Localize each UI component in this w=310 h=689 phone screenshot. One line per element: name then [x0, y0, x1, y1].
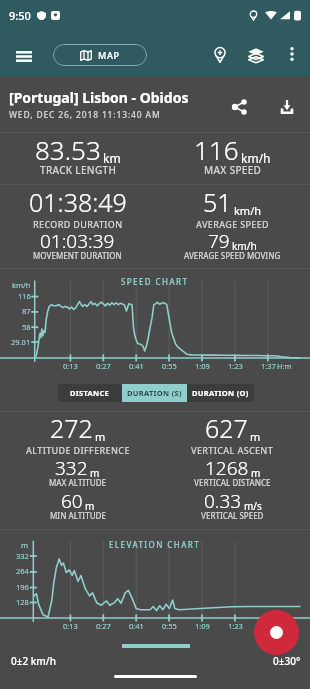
staticText: km [103, 150, 121, 166]
staticText: 196 [16, 582, 29, 592]
button[interactable]: Share [222, 90, 256, 124]
staticText: 01:38:49 [29, 185, 127, 219]
staticText: 1:09 [195, 621, 210, 631]
staticText: DISTANCE [70, 388, 110, 398]
button[interactable]: MAP [53, 44, 147, 66]
button[interactable]: DISTANCE [58, 384, 122, 402]
staticText: RECORD DURATION [33, 218, 123, 230]
staticText: km/h [234, 203, 262, 218]
staticText: 51 [203, 185, 232, 219]
staticText: MAX SPEED [204, 163, 262, 177]
staticText: 0:41 [129, 621, 144, 631]
staticText: km/h [241, 150, 271, 166]
staticText: 0±30° [273, 654, 301, 668]
staticText: 1:09 [195, 361, 210, 371]
staticText: m [251, 466, 261, 480]
button[interactable]: Record [254, 610, 299, 655]
button[interactable]: DURATION (O) [187, 384, 254, 402]
staticText: DURATION (S) [127, 388, 182, 398]
staticText: m/s [244, 499, 262, 513]
staticText: 128 [16, 597, 29, 607]
button[interactable]: More options [276, 38, 308, 70]
staticText: m [90, 466, 100, 480]
staticText: MOVEMENT DURATION [33, 250, 122, 261]
staticText: m [250, 429, 261, 444]
staticText: 0:55 [162, 361, 177, 371]
staticText: 0:13 [63, 621, 78, 631]
staticText: 0.33 [204, 488, 242, 514]
staticText: km/h [12, 280, 31, 290]
staticText: 1268 [205, 455, 249, 481]
button[interactable]: Download [270, 90, 304, 124]
staticText: AVERAGE SPEED MOVING [184, 250, 281, 261]
staticText: 87 [22, 306, 31, 316]
staticText: 1:23 [228, 361, 243, 371]
staticText: 29.01 [11, 337, 31, 347]
staticText: 0:27 [96, 361, 111, 371]
button[interactable]: Map layers [239, 38, 273, 72]
staticText: TRACK LENGTH [40, 163, 117, 177]
staticText: ALTITUDE DIFFERENCE [26, 444, 130, 456]
staticText: 60 [61, 488, 83, 514]
staticText: MIN ALTITUDE [50, 510, 106, 521]
staticText: m [21, 540, 29, 550]
staticText: SPEED CHART [121, 276, 189, 287]
staticText: 0±2 km/h [11, 654, 56, 668]
staticText: AVERAGE SPEED [196, 218, 269, 230]
button[interactable]: DURATION (S) [122, 384, 187, 402]
staticText: 0:41 [129, 361, 144, 371]
staticText: 1:37 [261, 361, 276, 371]
staticText: 79 [208, 228, 230, 254]
staticText: 0:55 [162, 621, 177, 631]
staticText: 116 [18, 291, 31, 301]
staticText: VERTICAL ASCENT [191, 444, 274, 456]
staticText: MAX ALTITUDE [49, 477, 106, 488]
staticText: VERTICAL SPEED [201, 510, 264, 521]
staticText: WED, DEC 26, 2018 11:13:40 AM [9, 109, 161, 121]
staticText: 58 [22, 322, 31, 332]
staticText: 116 [194, 132, 239, 167]
staticText: m [85, 499, 95, 513]
staticText: 0:27 [96, 621, 111, 631]
staticText: 332 [16, 551, 29, 561]
staticText: 627 [205, 411, 248, 445]
staticText: 83.53 [35, 132, 101, 167]
staticText: ELEVATION CHART [109, 539, 201, 550]
staticText: m [95, 429, 106, 444]
staticText: H:m [277, 361, 292, 371]
staticText: 0:13 [63, 361, 78, 371]
staticText: DURATION (O) [192, 388, 249, 398]
staticText: MAP [98, 49, 120, 61]
staticText: VERTICAL DISTANCE [194, 477, 271, 488]
staticText: 272 [50, 411, 93, 445]
staticText: 1:23 [228, 621, 243, 631]
staticText: 01:03:39 [40, 228, 115, 254]
staticText: 9:50 [9, 8, 31, 23]
staticText: 332 [55, 455, 88, 481]
button[interactable]: Add waypoint [203, 38, 237, 72]
button[interactable]: Navigation menu [6, 38, 42, 74]
staticText: km/h [232, 239, 257, 253]
staticText: 264 [16, 566, 29, 576]
staticText: [Portugal] Lisbon - Obidos [9, 88, 189, 107]
